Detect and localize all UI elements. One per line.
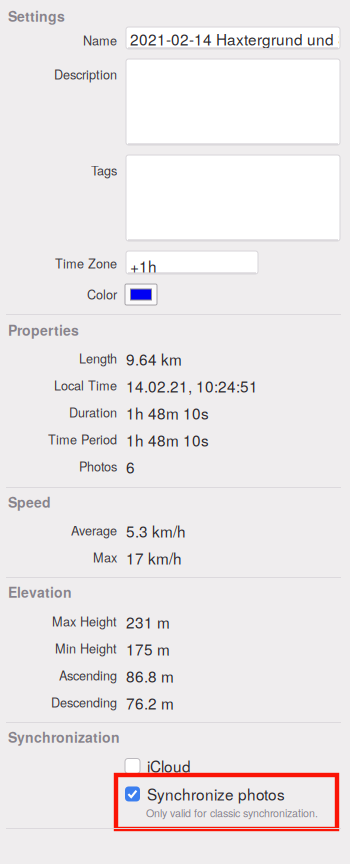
staticText: Max <box>93 548 117 566</box>
staticText: Properties <box>8 320 79 340</box>
staticText: Average <box>71 521 117 539</box>
staticText: 86.8 m <box>126 665 174 687</box>
staticText: Synchronize photos <box>147 783 285 805</box>
staticText: Length <box>79 349 117 367</box>
button[interactable]: Synchronize photos <box>125 783 285 805</box>
staticText: Synchronization <box>8 727 120 747</box>
staticText: 14.02.21, 10:24:51 <box>126 375 258 397</box>
staticText: 5.3 km/h <box>126 520 186 542</box>
staticText: Descending <box>51 693 117 711</box>
staticText: Min Height <box>55 639 117 657</box>
staticText: 1h 48m 10s <box>126 429 209 451</box>
staticText: 1h 48m 10s <box>126 402 209 424</box>
staticText: 2021-02-14 Haxtergrund und Sonnenberg <box>130 28 350 50</box>
staticText: Ascending <box>59 666 117 684</box>
staticText: Duration <box>69 403 117 421</box>
staticText: 231 m <box>126 611 170 633</box>
button[interactable]: Color <box>125 284 157 305</box>
staticText: iCloud <box>147 755 191 777</box>
staticText: Speed <box>8 492 51 512</box>
staticText: Settings <box>8 6 65 26</box>
staticText: Time Period <box>48 430 117 448</box>
staticText: Local Time <box>54 376 117 394</box>
staticText: 6 <box>126 456 135 478</box>
staticText: 17 km/h <box>126 547 182 569</box>
staticText: 9.64 km <box>126 348 182 370</box>
staticText: Time Zone <box>55 254 117 272</box>
staticText: Photos <box>79 457 117 475</box>
staticText: 175 m <box>126 638 170 660</box>
staticText: Name <box>83 31 117 49</box>
staticText: +1h <box>130 255 157 277</box>
staticText: Description <box>54 65 117 83</box>
staticText: Elevation <box>8 582 72 602</box>
staticText: Color <box>87 285 117 303</box>
button[interactable]: iCloud <box>125 755 191 777</box>
staticText: Only valid for classic synchronization. <box>146 805 318 820</box>
staticText: Tags <box>91 161 117 179</box>
staticText: Max Height <box>52 612 117 630</box>
staticText: 76.2 m <box>126 692 174 714</box>
